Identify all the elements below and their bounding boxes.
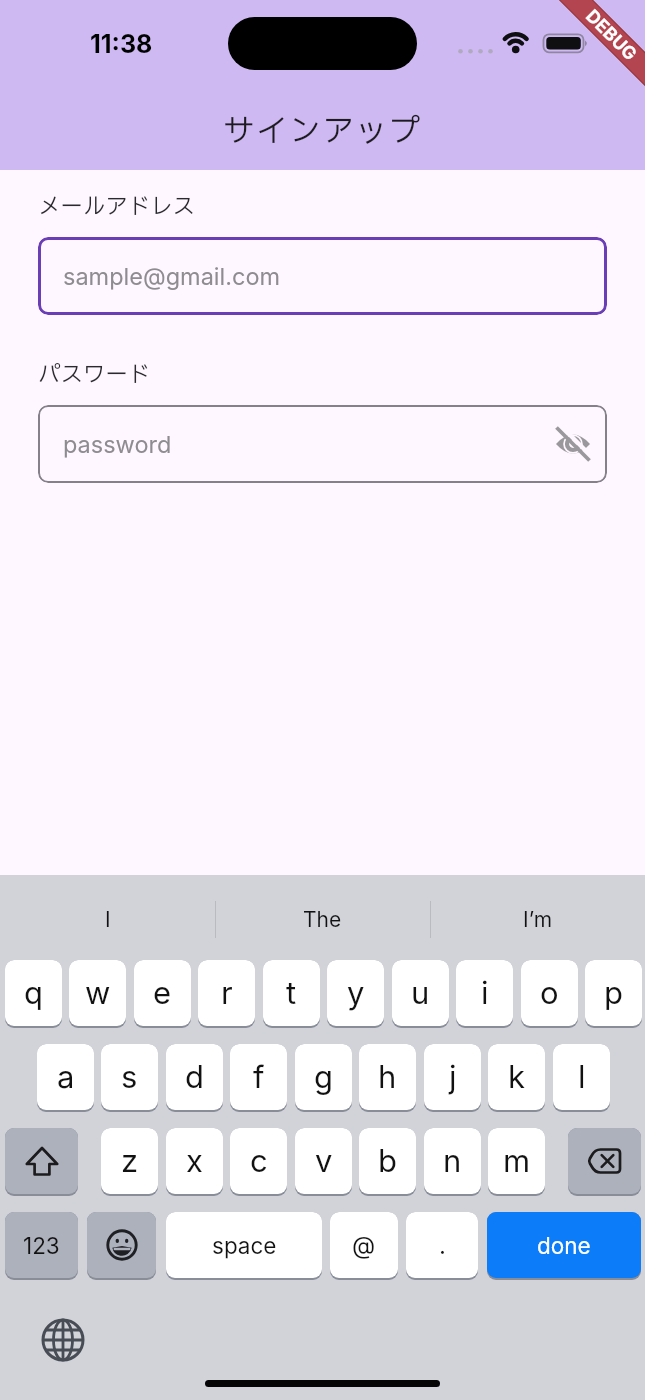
staticText: space <box>212 1232 277 1259</box>
staticText: f <box>253 1058 265 1096</box>
button[interactable]: w <box>69 960 126 1026</box>
button[interactable]: I’m <box>430 899 645 939</box>
staticText: v <box>315 1142 333 1180</box>
staticText: s <box>121 1058 138 1096</box>
staticText: c <box>250 1142 268 1180</box>
button[interactable]: a <box>37 1044 94 1110</box>
button[interactable]: space <box>166 1212 322 1278</box>
button[interactable]: s <box>101 1044 158 1110</box>
button[interactable]: g <box>295 1044 352 1110</box>
button[interactable]: v <box>295 1128 352 1194</box>
button[interactable]: e <box>134 960 191 1026</box>
button[interactable] <box>553 426 593 462</box>
button[interactable] <box>568 1128 641 1194</box>
button[interactable]: n <box>424 1128 481 1194</box>
staticText: 123 <box>23 1232 60 1259</box>
button[interactable]: q <box>5 960 62 1026</box>
staticText: t <box>286 974 297 1012</box>
staticText: @ <box>352 1231 376 1260</box>
staticText: p <box>604 974 623 1012</box>
button[interactable]: m <box>488 1128 545 1194</box>
button[interactable]: h <box>359 1044 416 1110</box>
staticText: パスワード <box>38 358 151 392</box>
staticText: x <box>186 1142 203 1180</box>
button[interactable]: y <box>327 960 384 1026</box>
staticText: sample@gmail.com <box>63 262 281 290</box>
button[interactable]: t <box>263 960 320 1026</box>
staticText: DEBUG <box>581 5 641 65</box>
staticText: 11:38 <box>90 29 153 59</box>
staticText: a <box>57 1058 75 1096</box>
button[interactable]: i <box>456 960 513 1026</box>
staticText: k <box>508 1058 526 1096</box>
button[interactable] <box>87 1212 156 1278</box>
button[interactable]: p <box>585 960 642 1026</box>
button[interactable]: o <box>521 960 578 1026</box>
staticText: I <box>105 907 111 932</box>
button[interactable]: l <box>553 1044 610 1110</box>
staticText: メールアドレス <box>38 190 196 224</box>
staticText: o <box>540 974 559 1012</box>
staticText: i <box>481 974 489 1012</box>
button[interactable]: b <box>359 1128 416 1194</box>
staticText: d <box>185 1058 204 1096</box>
staticText: h <box>378 1058 397 1096</box>
staticText: n <box>443 1142 462 1180</box>
button[interactable]: u <box>392 960 449 1026</box>
button[interactable]: r <box>198 960 255 1026</box>
button[interactable]: 123 <box>5 1212 78 1278</box>
staticText: w <box>85 974 111 1012</box>
button[interactable]: x <box>166 1128 223 1194</box>
button[interactable]: k <box>488 1044 545 1110</box>
button[interactable]: f <box>230 1044 287 1110</box>
button[interactable] <box>41 1318 85 1362</box>
staticText: b <box>378 1142 397 1180</box>
button[interactable]: password <box>38 405 607 483</box>
button[interactable]: The <box>215 899 430 939</box>
staticText: m <box>503 1142 531 1180</box>
staticText: done <box>537 1232 591 1259</box>
staticText: l <box>578 1058 586 1096</box>
button[interactable]: d <box>166 1044 223 1110</box>
staticText: u <box>411 974 430 1012</box>
staticText: The <box>303 907 342 932</box>
button[interactable] <box>5 1128 78 1194</box>
staticText: q <box>24 974 43 1012</box>
staticText: サインアップ <box>223 108 423 154</box>
button[interactable]: . <box>406 1212 478 1278</box>
staticText: . <box>439 1231 446 1260</box>
button[interactable]: I <box>0 899 215 939</box>
staticText: y <box>347 974 365 1012</box>
button[interactable]: z <box>101 1128 158 1194</box>
button[interactable]: @ <box>330 1212 398 1278</box>
staticText: r <box>221 974 233 1012</box>
staticText: I’m <box>523 907 553 932</box>
button[interactable]: done <box>487 1212 641 1278</box>
button[interactable]: c <box>230 1128 287 1194</box>
staticText: e <box>153 974 172 1012</box>
staticText: password <box>63 430 172 458</box>
staticText: g <box>314 1058 334 1096</box>
button[interactable]: j <box>424 1044 481 1110</box>
staticText: j <box>449 1058 457 1096</box>
button[interactable]: sample@gmail.com <box>38 237 607 315</box>
staticText: z <box>121 1142 139 1180</box>
